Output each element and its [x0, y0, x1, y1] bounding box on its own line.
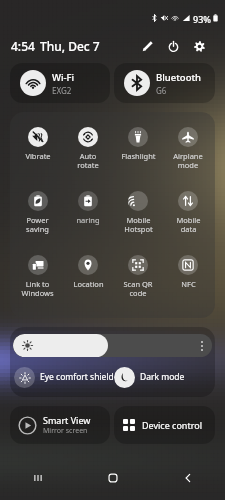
staticText: Airplane mode [173, 151, 203, 171]
button[interactable]: Wi-Fi [10, 63, 110, 103]
staticText: Link to Windows [21, 279, 54, 299]
staticText: Auto rotate [77, 151, 99, 171]
button[interactable]: Home [75, 455, 150, 500]
button[interactable]: Vibrate [12, 122, 63, 186]
staticText: Smart View [43, 414, 91, 426]
staticText: Device control [142, 419, 202, 431]
staticText: Thu, Dec 7 [40, 38, 100, 54]
staticText: Mobile Hotspot [124, 215, 153, 235]
staticText: NFC [181, 279, 196, 289]
button[interactable]: Edit [136, 35, 158, 57]
staticText: Dark mode [140, 371, 185, 383]
button[interactable]: Auto rotate [63, 122, 113, 186]
button[interactable]: Settings [188, 35, 210, 57]
button[interactable]: NFC [163, 250, 213, 314]
button[interactable]: Bluetooth [114, 63, 215, 103]
staticText: Power saving [26, 215, 49, 235]
staticText: 93% [193, 13, 211, 25]
button[interactable]: Power saving [12, 186, 63, 250]
staticText: Mirror screen [43, 426, 88, 436]
staticText: EXG2 [52, 85, 72, 96]
staticText: Wi-Fi [52, 71, 75, 84]
button[interactable]: Dark mode [114, 363, 215, 391]
button[interactable]: Mobile Hotspot [113, 186, 163, 250]
staticText: Eye comfort shield [40, 371, 114, 383]
staticText: naring [76, 215, 100, 225]
staticText: Flashlight [121, 151, 156, 161]
button[interactable]: Mobile data [163, 186, 213, 250]
button[interactable]: naring [63, 186, 113, 250]
staticText: Mobile data [176, 215, 201, 235]
staticText: Location [73, 279, 104, 289]
button[interactable]: Eye comfort shield [14, 363, 114, 391]
button[interactable]: Smart View [10, 406, 110, 444]
staticText: Vibrate [25, 151, 51, 161]
staticText: G6 [156, 85, 167, 96]
button[interactable]: Device control [114, 406, 215, 444]
button[interactable]: Recents [0, 455, 75, 500]
button[interactable]: Back [150, 455, 225, 500]
button[interactable]: Flashlight [113, 122, 163, 186]
button[interactable]: Airplane mode [163, 122, 213, 186]
staticText: Bluetooth [156, 71, 202, 84]
button[interactable]: Scan QR code [113, 250, 163, 314]
staticText: Scan QR code [123, 279, 153, 299]
button[interactable]: Link to Windows [12, 250, 63, 314]
staticText: 4:54 [11, 38, 35, 54]
button[interactable]: Power [162, 35, 184, 57]
button[interactable] [13, 334, 212, 357]
button[interactable]: Location [63, 250, 113, 314]
